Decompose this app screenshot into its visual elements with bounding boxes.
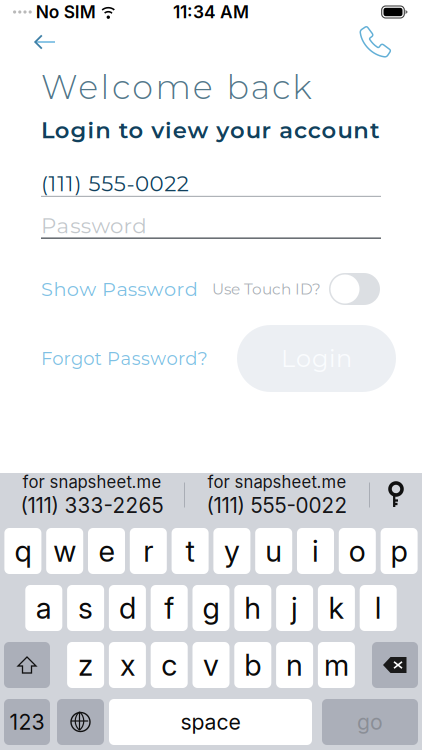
staticText: (111) 555-0022	[206, 493, 347, 518]
staticText: (111) 333-2265	[20, 493, 163, 518]
staticText: e	[98, 533, 114, 569]
staticText: a	[36, 590, 52, 626]
staticText: for snapsheet.me	[22, 472, 161, 492]
button[interactable]: n	[276, 642, 313, 688]
button[interactable]: Back	[27, 26, 63, 57]
button[interactable]: j	[276, 585, 313, 631]
staticText: Use Touch ID?	[212, 280, 321, 298]
staticText: d	[119, 590, 136, 626]
button[interactable]: x	[109, 642, 146, 688]
button[interactable]: z	[67, 642, 104, 688]
button[interactable]: f	[151, 585, 188, 631]
button[interactable]: e	[88, 528, 125, 574]
button[interactable]: u	[255, 528, 292, 574]
staticText: b	[244, 647, 261, 683]
staticText: 123	[9, 709, 44, 735]
staticText: Password	[41, 212, 146, 238]
staticText: s	[78, 590, 93, 626]
staticText: (111) 555-0022	[41, 170, 189, 196]
button[interactable]: Call	[356, 24, 394, 59]
button[interactable]: m	[318, 642, 355, 688]
staticText: Login	[281, 344, 352, 373]
staticText: f	[164, 590, 174, 626]
button[interactable]: Shift	[4, 642, 50, 688]
button[interactable]: c	[151, 642, 188, 688]
button[interactable]: b	[234, 642, 271, 688]
button[interactable]: g	[192, 585, 229, 631]
staticText: k	[328, 590, 344, 626]
staticText: Welcome back	[41, 67, 311, 107]
staticText: space	[180, 709, 240, 735]
staticText: 11:34 AM	[173, 1, 249, 22]
button[interactable]: Login	[237, 325, 396, 392]
button[interactable]: o	[339, 528, 376, 574]
button[interactable]: for snapsheet.me	[185, 472, 369, 518]
staticText: z	[78, 647, 93, 683]
button[interactable]: i	[297, 528, 334, 574]
staticText: t	[186, 533, 195, 569]
button[interactable]: Passwords	[370, 473, 422, 517]
staticText: Show Password	[41, 277, 198, 301]
button[interactable]: Use Touch ID	[329, 273, 380, 305]
button[interactable]: l	[360, 585, 397, 631]
staticText: n	[286, 647, 303, 683]
button[interactable]: 123	[4, 699, 50, 745]
staticText: r	[143, 533, 153, 569]
button[interactable]: d	[109, 585, 146, 631]
staticText: l	[375, 590, 382, 626]
staticText: p	[391, 533, 408, 569]
button[interactable]: Forgot Password?	[41, 347, 207, 369]
button[interactable]: s	[67, 585, 104, 631]
button[interactable]: w	[46, 528, 83, 574]
staticText: for snapsheet.me	[207, 472, 346, 492]
button[interactable]: r	[130, 528, 167, 574]
button[interactable]: h	[234, 585, 271, 631]
button[interactable]: Delete	[372, 642, 418, 688]
button[interactable]: v	[192, 642, 229, 688]
staticText: u	[265, 533, 282, 569]
button[interactable]: for snapsheet.me	[0, 472, 184, 518]
button[interactable]: Next keyboard	[57, 699, 104, 745]
staticText: Forgot Password?	[41, 347, 207, 369]
button[interactable]: y	[213, 528, 250, 574]
button[interactable]: t	[172, 528, 209, 574]
staticText: q	[14, 533, 31, 569]
staticText: w	[53, 533, 76, 569]
staticText: m	[324, 647, 349, 683]
staticText: i	[312, 533, 319, 569]
staticText: v	[203, 647, 219, 683]
staticText: c	[161, 647, 177, 683]
button[interactable]: p	[381, 528, 418, 574]
staticText: x	[120, 647, 135, 683]
staticText: No SIM	[36, 1, 96, 22]
button[interactable]: go	[322, 699, 418, 745]
button[interactable]: space	[109, 699, 312, 745]
staticText: y	[224, 533, 240, 569]
staticText: g	[202, 590, 219, 626]
button[interactable]: k	[318, 585, 355, 631]
staticText: j	[291, 590, 298, 626]
staticText: go	[357, 709, 383, 735]
button[interactable]: q	[4, 528, 41, 574]
staticText: Login to view your account	[41, 116, 380, 144]
staticText: h	[244, 590, 261, 626]
button[interactable]: a	[25, 585, 62, 631]
button[interactable]: Show Password	[41, 277, 198, 301]
staticText: o	[349, 533, 366, 569]
